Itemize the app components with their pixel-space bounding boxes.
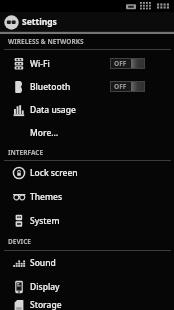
- button[interactable]: Storage: [0, 299, 174, 310]
- staticText: OFF: [114, 59, 127, 68]
- button[interactable]: Sound: [0, 251, 174, 275]
- button[interactable]: Bluetooth: [0, 75, 174, 98]
- staticText: Lock screen: [30, 167, 78, 179]
- staticText: Themes: [30, 191, 63, 203]
- staticText: Sound: [30, 257, 56, 269]
- staticText: Settings: [22, 16, 57, 28]
- button[interactable]: System: [0, 209, 174, 233]
- staticText: Data usage: [30, 104, 76, 116]
- button[interactable]: Data usage: [0, 98, 174, 121]
- button[interactable]: Wi-Fi: [0, 52, 174, 75]
- staticText: Bluetooth: [30, 81, 71, 93]
- staticText: WIRELESS & NETWORKS: [8, 37, 84, 46]
- staticText: DEVICE: [8, 237, 31, 246]
- staticText: Wi-Fi: [30, 58, 50, 70]
- staticText: System: [30, 215, 60, 227]
- staticText: INTERFACE: [8, 148, 44, 157]
- button[interactable]: More…: [0, 121, 174, 144]
- staticText: OFF: [114, 82, 127, 91]
- button[interactable]: OFF: [110, 58, 145, 69]
- button[interactable]: OFF: [110, 81, 145, 92]
- button[interactable]: Lock screen: [0, 161, 174, 185]
- staticText: Display: [30, 281, 60, 293]
- button[interactable]: Themes: [0, 185, 174, 209]
- staticText: More…: [30, 127, 59, 139]
- button[interactable]: Display: [0, 275, 174, 299]
- staticText: Storage: [30, 299, 62, 310]
